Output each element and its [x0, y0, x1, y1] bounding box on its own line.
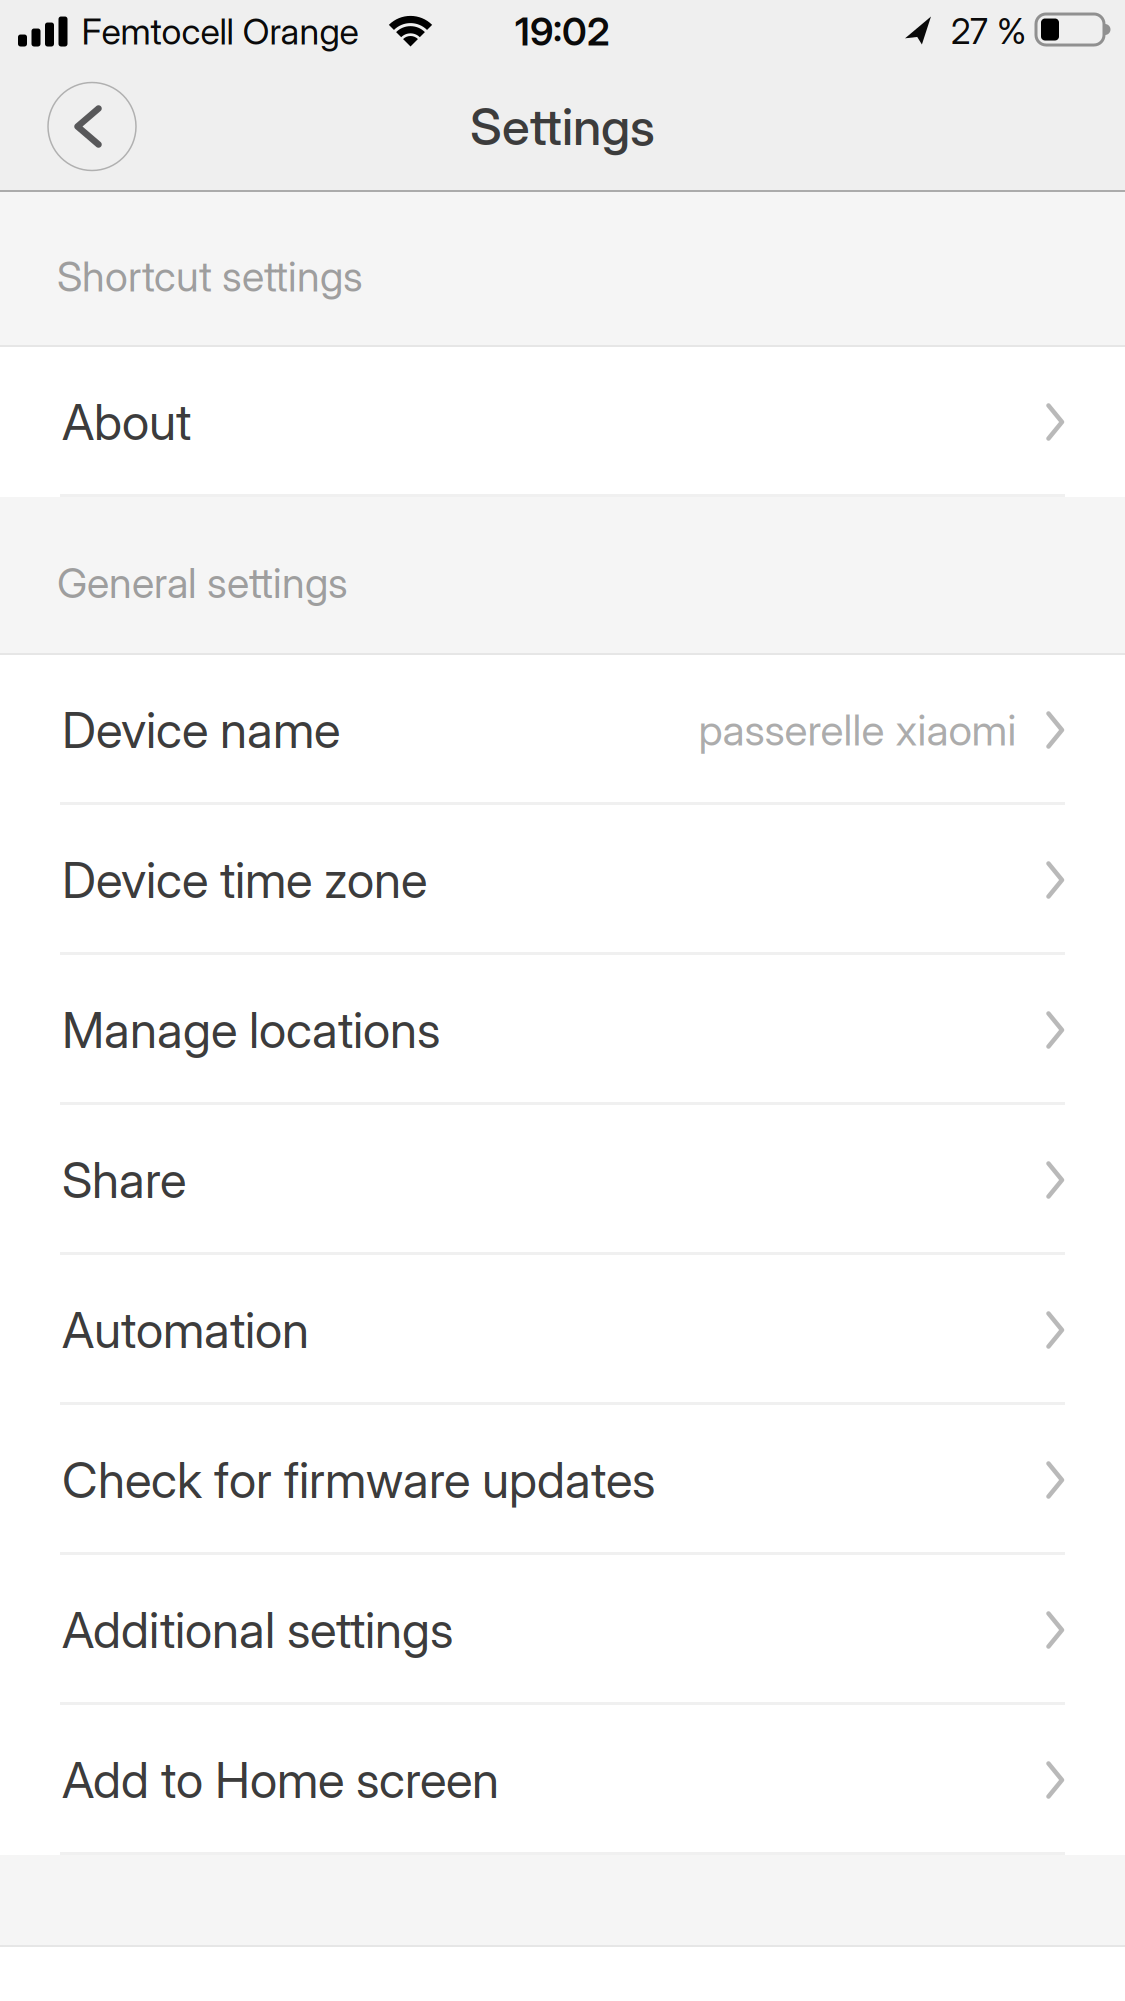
button[interactable]: Device name	[0, 655, 1125, 805]
button[interactable]: Back	[48, 82, 136, 170]
button[interactable]: Share	[0, 1105, 1125, 1255]
staticText: Manage locations	[62, 1001, 440, 1059]
button[interactable]: Add to Home screen	[0, 1705, 1125, 1855]
staticText: Share	[62, 1151, 186, 1209]
staticText: General settings	[57, 559, 348, 607]
button[interactable]: About	[0, 347, 1125, 497]
staticText: 19:02	[515, 9, 610, 54]
button[interactable]: Check for firmware updates	[0, 1405, 1125, 1555]
staticText: Device name	[62, 701, 340, 759]
button[interactable]: Additional settings	[0, 1555, 1125, 1705]
staticText: Additional settings	[62, 1601, 453, 1659]
staticText: Automation	[62, 1301, 309, 1359]
staticText: Femtocell Orange	[81, 10, 358, 53]
staticText: About	[62, 393, 191, 451]
staticText: Device time zone	[62, 851, 427, 909]
staticText: 27 %	[951, 11, 1026, 52]
button[interactable]: Device time zone	[0, 805, 1125, 955]
button[interactable]: Automation	[0, 1255, 1125, 1405]
staticText: Check for firmware updates	[62, 1451, 655, 1509]
staticText: passerelle xiaomi	[698, 705, 1016, 755]
staticText: Add to Home screen	[62, 1751, 499, 1809]
button[interactable]: Manage locations	[0, 955, 1125, 1105]
staticText: Shortcut settings	[57, 252, 363, 301]
staticText: Settings	[470, 97, 655, 156]
